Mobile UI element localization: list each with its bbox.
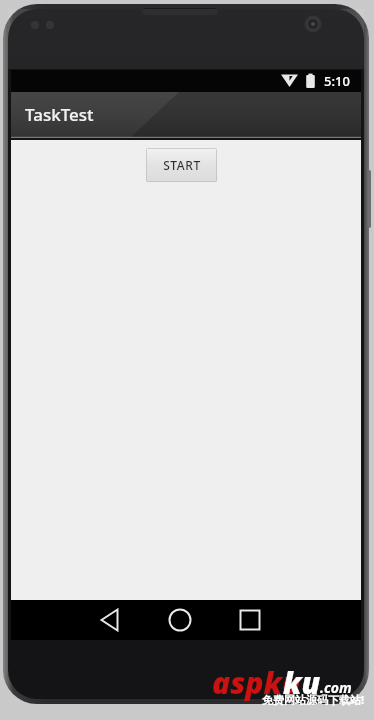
- staticText: START: [163, 157, 201, 173]
- button[interactable]: Recent apps: [228, 600, 272, 640]
- staticText: aspku: [212, 662, 301, 703]
- button[interactable]: START: [146, 148, 217, 182]
- staticText: 免费网站源码下载站!: [262, 692, 365, 707]
- staticText: .com: [320, 678, 352, 697]
- button[interactable]: Back: [88, 600, 132, 640]
- staticText: TaskTest: [25, 103, 94, 126]
- button[interactable]: Home: [158, 600, 202, 640]
- staticText: ku: [283, 662, 321, 703]
- staticText: 5:10: [324, 72, 350, 90]
